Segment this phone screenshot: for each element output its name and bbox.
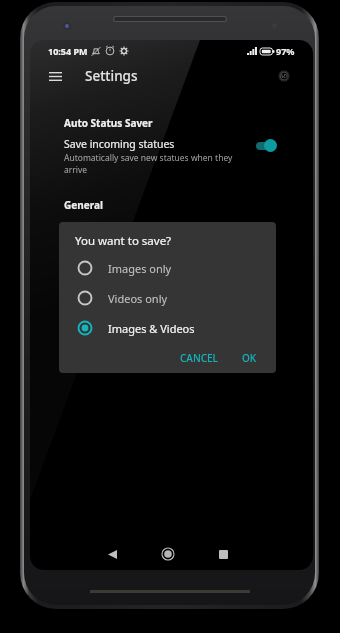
staticText: Automatically save new statues when they…	[64, 152, 242, 176]
staticText: General	[64, 198, 103, 212]
staticText: Auto Status Saver	[64, 116, 153, 130]
button[interactable]: Images & Videos	[59, 313, 276, 343]
staticText: Videos only	[108, 291, 168, 306]
button[interactable]: Images only	[59, 253, 276, 283]
button[interactable]: Back	[95, 537, 129, 570]
staticText: You want to save?	[75, 233, 172, 249]
staticText: Images only	[108, 261, 172, 276]
button[interactable]: Videos only	[59, 283, 276, 313]
staticText: 10:54 PM	[48, 45, 88, 57]
staticText: OK	[242, 351, 257, 365]
button[interactable]: CANCEL	[175, 347, 223, 369]
staticText: Settings	[85, 67, 138, 85]
staticText: CANCEL	[180, 351, 218, 365]
staticText: AD	[280, 73, 288, 80]
button[interactable]: Home	[151, 537, 185, 570]
staticText: 97%	[276, 45, 295, 57]
button[interactable]: Remove ads	[272, 64, 296, 88]
button[interactable]: Menu	[43, 64, 67, 88]
button[interactable]: OK	[237, 347, 262, 369]
button[interactable]: Save incoming statues	[64, 137, 277, 176]
button[interactable]: Recents	[206, 537, 240, 570]
staticText: Images & Videos	[108, 321, 195, 336]
staticText: Save incoming statues	[64, 137, 175, 151]
